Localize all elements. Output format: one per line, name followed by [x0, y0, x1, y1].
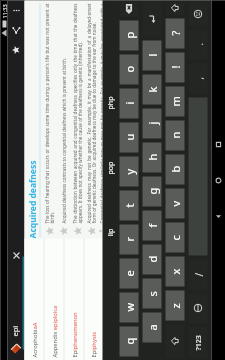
staticText: w: [121, 302, 136, 311]
button[interactable]: t: [119, 190, 138, 220]
staticText: s: [144, 290, 159, 296]
button[interactable]: p: [119, 20, 138, 50]
staticText: The distinction between acquired and con…: [71, 3, 83, 223]
button[interactable]: s: [142, 278, 161, 308]
button[interactable]: Epiphysis: [84, 238, 102, 360]
staticText: x: [167, 268, 182, 274]
staticText: ?123: [193, 334, 203, 350]
button[interactable]: g: [142, 176, 161, 206]
button[interactable]: Key: [188, 293, 207, 323]
staticText: y: [121, 168, 136, 174]
button[interactable]: r: [119, 224, 138, 254]
button[interactable]: z: [165, 290, 184, 320]
button[interactable]: AcrophobiaA: [24, 238, 43, 360]
staticText: epi: [9, 325, 19, 336]
button[interactable]: ?: [165, 18, 184, 48]
button[interactable]: Key: [188, 63, 207, 93]
button[interactable]: Recent apps: [211, 137, 225, 151]
button[interactable]: y: [119, 156, 138, 186]
button[interactable]: Navigate up: [7, 338, 24, 360]
staticText: f: [144, 223, 159, 227]
button[interactable]: Home: [211, 173, 225, 187]
button[interactable]: m: [165, 86, 184, 116]
button[interactable]: o: [119, 54, 138, 84]
button[interactable]: Key: [165, 2, 184, 14]
staticText: j: [144, 121, 159, 124]
staticText: AcrophobiaA: [30, 322, 38, 357]
staticText: Acquired deafness contrasts to congenita…: [60, 57, 66, 223]
button[interactable]: a: [142, 312, 161, 342]
button[interactable]: lip: [102, 200, 117, 265]
button[interactable]: l: [142, 40, 161, 70]
button[interactable]: Epiphenomenon: [64, 238, 83, 360]
button[interactable]: k: [142, 74, 161, 104]
staticText: .: [192, 42, 204, 45]
button[interactable]: b: [165, 154, 184, 184]
staticText: r: [121, 236, 136, 241]
button[interactable]: Share: [7, 20, 24, 40]
button[interactable]: Back: [211, 209, 225, 223]
staticText: q: [121, 337, 136, 344]
button[interactable]: v: [165, 188, 184, 218]
button[interactable]: d: [142, 244, 161, 274]
button[interactable]: q: [119, 326, 138, 356]
staticText: d: [144, 255, 159, 262]
staticText: m: [167, 95, 182, 106]
button[interactable]: f: [142, 210, 161, 240]
button[interactable]: More options: [7, 0, 24, 20]
staticText: Epiphysis: [89, 331, 97, 357]
staticText: i: [121, 101, 136, 104]
button[interactable]: c: [165, 222, 184, 252]
staticText: /: [191, 272, 205, 276]
button[interactable]: Key: [188, 327, 207, 357]
button[interactable]: h: [142, 142, 161, 172]
staticText: The loss of hearing that occurs or devel…: [43, 3, 55, 223]
staticText: v: [167, 200, 182, 206]
staticText: z: [167, 302, 182, 308]
staticText: p: [121, 31, 136, 38]
button[interactable]: w: [119, 292, 138, 322]
button[interactable]: Key: [142, 2, 161, 36]
staticText: ?: [167, 30, 182, 35]
button[interactable]: Bookmark: [7, 40, 24, 60]
staticText: b: [167, 165, 182, 172]
button[interactable]: Key: [165, 324, 184, 357]
button[interactable]: n: [165, 120, 184, 150]
staticText: e: [121, 269, 136, 276]
staticText: ,: [192, 76, 204, 79]
button[interactable]: i: [119, 88, 138, 118]
staticText: lip: [105, 228, 115, 236]
staticText: g: [144, 187, 159, 194]
button[interactable]: Clear query: [9, 249, 22, 262]
button[interactable]: e: [119, 258, 138, 288]
button[interactable]: Key: [188, 2, 207, 25]
button[interactable]: Appendix epiploica: [44, 238, 63, 360]
staticText: Epiphenomenon: [70, 311, 78, 357]
button[interactable]: u: [119, 122, 138, 152]
staticText: k: [144, 86, 159, 92]
button[interactable]: The distinction between acquired and con…: [70, 3, 84, 238]
button[interactable]: php: [102, 70, 117, 135]
button[interactable]: epi: [7, 250, 24, 338]
button[interactable]: !: [165, 52, 184, 82]
staticText: u: [121, 133, 136, 140]
staticText: n: [167, 131, 182, 138]
staticText: Acquired deafness: [26, 160, 38, 238]
staticText: o: [121, 65, 136, 72]
staticText: Congenital deafness similarly may or may…: [98, 3, 102, 223]
staticText: pop: [105, 161, 115, 174]
button[interactable]: j: [142, 108, 161, 138]
button[interactable]: x: [165, 256, 184, 286]
button[interactable]: Acquired deafness may not be genetic. Fo…: [84, 3, 98, 238]
staticText: c: [167, 234, 182, 240]
button[interactable]: Congenital deafness similarly may or may…: [98, 3, 102, 238]
button[interactable]: pop: [102, 135, 117, 200]
button[interactable]: Key: [188, 259, 207, 289]
button[interactable]: Space: [188, 97, 207, 255]
staticText: Acquired deafness may not be genetic. Fo…: [85, 3, 97, 223]
button[interactable]: The loss of hearing that occurs or devel…: [42, 3, 56, 238]
button[interactable]: Acquired deafness contrasts to congenita…: [56, 3, 70, 238]
button[interactable]: Key: [119, 2, 138, 16]
button[interactable]: Key: [188, 29, 207, 59]
staticText: l: [144, 53, 159, 56]
